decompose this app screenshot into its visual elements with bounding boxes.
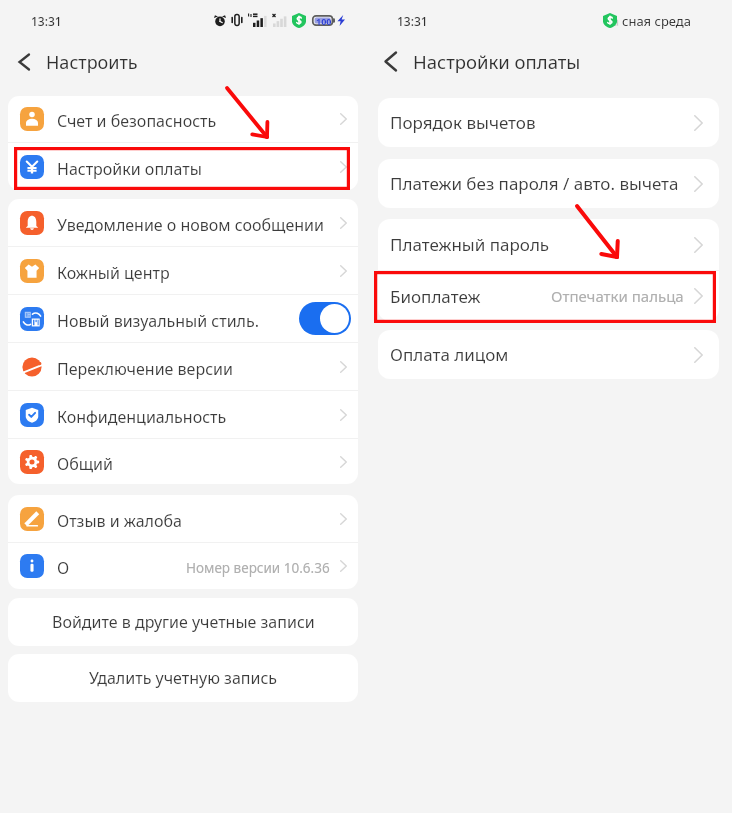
staticText: Удалить учетную запись [89,667,278,689]
button[interactable]: Настройки оплаты [8,143,358,190]
staticText: а [612,12,620,30]
staticText: Общий [57,453,113,475]
staticText: О [57,557,70,579]
staticText: Отпечатки пальца [551,286,684,306]
staticText: сная среда [622,12,691,30]
button[interactable]: О [8,543,358,589]
staticText: Платежи без пароля / авто. вычета [390,172,679,195]
staticText: Уведомление о новом сообщении [57,214,324,236]
staticText: Кожный центр [57,262,170,284]
staticText: Новый визуальный стиль. [57,310,259,332]
staticText: Конфиденциальность [57,406,227,428]
button[interactable]: Уведомление о новом сообщении [8,199,358,246]
button[interactable]: Переключение версии [8,343,358,390]
button[interactable]: Общий [8,439,358,484]
button[interactable]: Удалить учетную запись [8,654,358,702]
button[interactable]: Оплата лицом [378,330,719,379]
button[interactable]: Войдите в другие учетные записи [8,598,358,646]
staticText: Войдите в другие учетные записи [52,611,315,633]
staticText: Номер версии 10.6.36 [186,559,330,577]
button[interactable]: Кожный центр [8,247,358,294]
button[interactable]: Платежи без пароля / авто. вычета [378,159,719,208]
staticText: Отзыв и жалоба [57,510,182,532]
staticText: Переключение версии [57,358,233,380]
button[interactable]: Конфиденциальность [8,391,358,438]
staticText: Настроить [46,50,138,75]
staticText: Счет и безопасность [57,110,217,132]
staticText: 100 [316,15,332,27]
staticText: Платежный пароль [390,233,550,256]
button[interactable]: Платежный пароль [378,219,719,270]
staticText: 13:31 [397,13,428,29]
staticText: Настройки оплаты [413,49,581,74]
button[interactable]: Back [4,42,44,82]
button[interactable]: Биоплатеж [378,271,719,321]
staticText: Биоплатеж [390,285,481,308]
staticText: Оплата лицом [390,343,509,366]
button[interactable]: Отзыв и жалоба [8,495,358,542]
staticText: 13:31 [31,13,62,29]
button[interactable]: Счет и безопасность [8,96,358,142]
button[interactable]: Toggle [299,302,351,335]
staticText: Порядок вычетов [390,111,536,134]
staticText: Настройки оплаты [57,158,202,180]
button[interactable]: Back [370,41,410,81]
button[interactable]: Порядок вычетов [378,98,719,147]
button[interactable]: Новый визуальный стиль. [8,295,358,342]
